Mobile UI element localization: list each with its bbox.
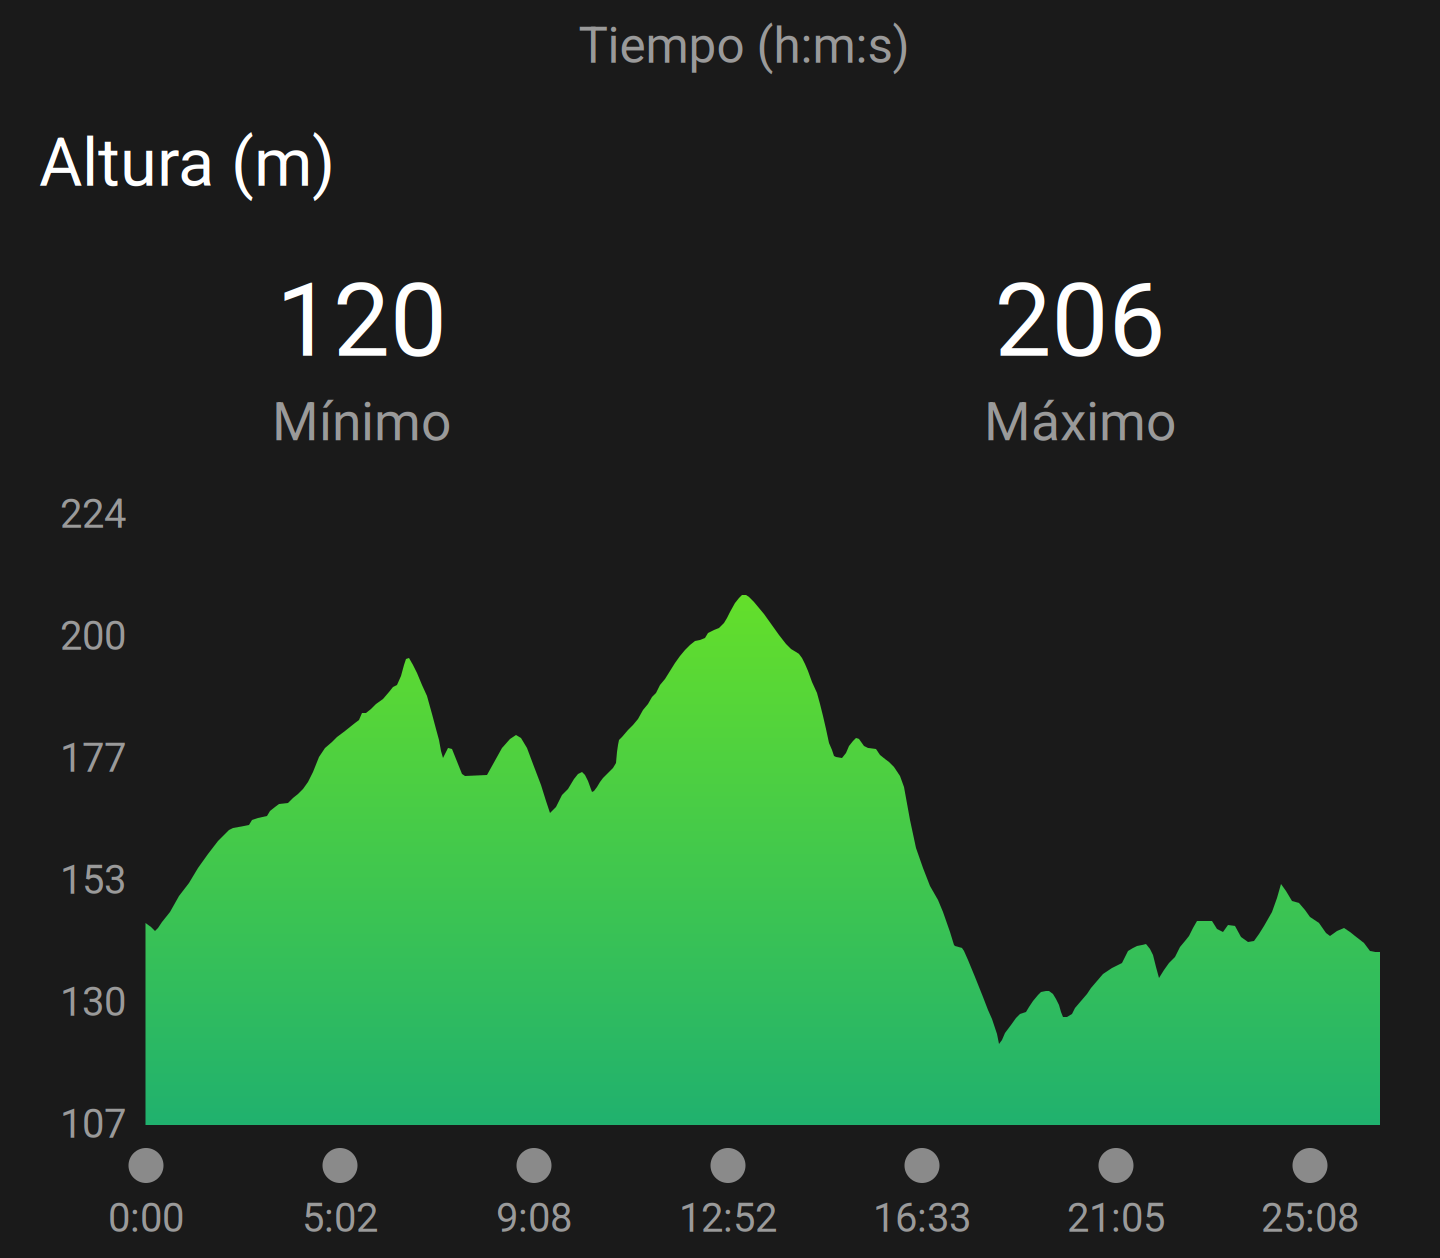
staticText: 5:02: [302, 1195, 378, 1241]
staticText: 224: [60, 491, 126, 537]
staticText: 16:33: [873, 1195, 971, 1241]
staticText: 0:00: [108, 1195, 184, 1241]
staticText: 9:08: [496, 1195, 572, 1241]
staticText: 130: [60, 979, 126, 1025]
button[interactable]: Elevation chart: [0, 0, 1440, 1258]
staticText: Máximo: [984, 391, 1176, 453]
staticText: 21:05: [1067, 1195, 1165, 1241]
staticText: Altura (m): [39, 124, 335, 202]
staticText: Tiempo (h:m:s): [578, 17, 909, 75]
staticText: Mínimo: [272, 391, 451, 453]
staticText: 177: [60, 735, 126, 781]
staticText: 107: [60, 1101, 126, 1147]
staticText: 153: [60, 857, 126, 903]
staticText: 120: [276, 262, 447, 380]
staticText: 25:08: [1261, 1195, 1359, 1241]
staticText: 200: [60, 613, 126, 659]
staticText: 206: [994, 262, 1165, 380]
staticText: 12:52: [679, 1195, 777, 1241]
